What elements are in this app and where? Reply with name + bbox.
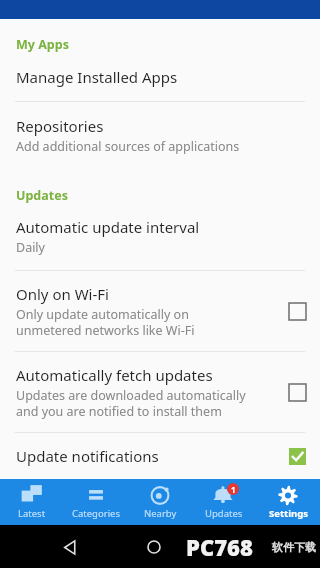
staticText: Only update automatically on unmetered n… bbox=[16, 306, 195, 338]
button[interactable]: Unchecked bbox=[288, 302, 306, 320]
button[interactable]: Latest bbox=[0, 479, 64, 525]
button[interactable]: Automatically fetch updates bbox=[0, 352, 320, 432]
button[interactable]: Categories bbox=[64, 479, 128, 525]
staticText: Automatic update interval bbox=[16, 217, 200, 237]
staticText: Categories bbox=[72, 507, 120, 520]
button[interactable]: Checked bbox=[288, 447, 306, 465]
staticText: Updates are downloaded automatically and… bbox=[16, 387, 246, 419]
button[interactable]: Update notifications bbox=[0, 433, 320, 479]
button[interactable]: Automatic update interval bbox=[0, 206, 320, 270]
button[interactable]: Nearby bbox=[128, 479, 192, 525]
button[interactable]: Manage Installed Apps bbox=[0, 55, 320, 101]
staticText: Update notifications bbox=[16, 446, 159, 466]
button[interactable]: Back bbox=[56, 534, 82, 560]
button[interactable]: Unchecked bbox=[288, 383, 306, 401]
staticText: Only on Wi-Fi bbox=[16, 284, 109, 304]
button[interactable]: Only on Wi-Fi bbox=[0, 271, 320, 351]
staticText: Daily bbox=[16, 239, 45, 256]
button[interactable]: Repositories bbox=[0, 102, 320, 169]
button[interactable]: Settings bbox=[256, 479, 320, 525]
staticText: 软件下载 bbox=[272, 540, 316, 554]
staticText: Latest bbox=[18, 507, 46, 520]
staticText: Manage Installed Apps bbox=[16, 67, 178, 87]
staticText: Settings bbox=[269, 507, 308, 520]
staticText: PC768 bbox=[186, 532, 253, 562]
button[interactable]: Recents bbox=[248, 534, 274, 560]
button[interactable]: 1 bbox=[192, 479, 256, 525]
staticText: Updates bbox=[205, 507, 243, 520]
staticText: My Apps bbox=[16, 36, 69, 53]
staticText: Repositories bbox=[16, 116, 104, 136]
button[interactable]: Home bbox=[141, 534, 167, 560]
staticText: 1 bbox=[231, 484, 236, 495]
staticText: Add additional sources of applications bbox=[16, 138, 240, 155]
staticText: Updates bbox=[16, 187, 68, 204]
staticText: Automatically fetch updates bbox=[16, 365, 213, 385]
staticText: Nearby bbox=[144, 507, 177, 520]
